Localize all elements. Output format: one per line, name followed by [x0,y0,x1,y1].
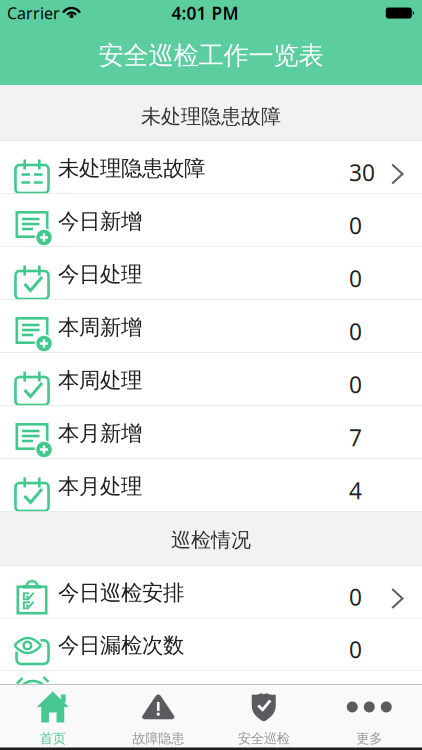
staticText: 未处理隐患故障 [141,104,281,129]
button[interactable]: 本月处理 [0,459,422,512]
button[interactable]: 本周新增 [0,300,422,353]
staticText: 本月处理 [58,473,142,500]
staticText: 7 [349,422,362,452]
staticText: 安全巡检 [238,730,290,747]
button[interactable]: 故障隐患 [105,681,211,750]
button[interactable]: 本周处理 [0,353,422,406]
button[interactable]: 本月新增 [0,406,422,459]
button[interactable]: 未处理隐患故障 [0,141,422,194]
staticText: 0 [349,263,362,293]
staticText: 本周新增 [58,314,142,341]
staticText: 安全巡检工作一览表 [98,40,323,71]
staticText: 30 [349,157,375,187]
staticText: 0 [349,634,362,664]
staticText: 0 [349,582,362,612]
staticText: 未处理隐患故障 [58,155,205,182]
button[interactable]: 今日巡检安排 [0,566,422,618]
button[interactable]: 今日新增 [0,194,422,247]
button[interactable]: 今日漏检次数 [0,618,422,671]
staticText: 今日处理 [58,261,142,288]
button[interactable]: 今日处理 [0,247,422,300]
staticText: 故障隐患 [132,730,184,747]
staticText: 巡检情况 [171,528,251,552]
staticText: Carrier [7,2,60,24]
staticText: 0 [349,210,362,240]
staticText: 今日漏检次数 [58,632,184,659]
button[interactable]: 更多 [316,681,422,750]
staticText: 本周处理 [58,367,142,394]
staticText: 4 [349,475,362,505]
staticText: 4:01 PM [171,1,238,24]
button[interactable]: 首页 [0,681,105,750]
staticText: 本月新增 [58,420,142,447]
button[interactable]: 安全巡检 [211,681,316,750]
staticText: 更多 [356,730,382,747]
staticText: 0 [349,316,362,346]
staticText: 今日新增 [58,208,142,235]
staticText: 首页 [40,730,66,747]
staticText: 今日巡检安排 [58,580,184,606]
staticText: 0 [349,369,362,399]
